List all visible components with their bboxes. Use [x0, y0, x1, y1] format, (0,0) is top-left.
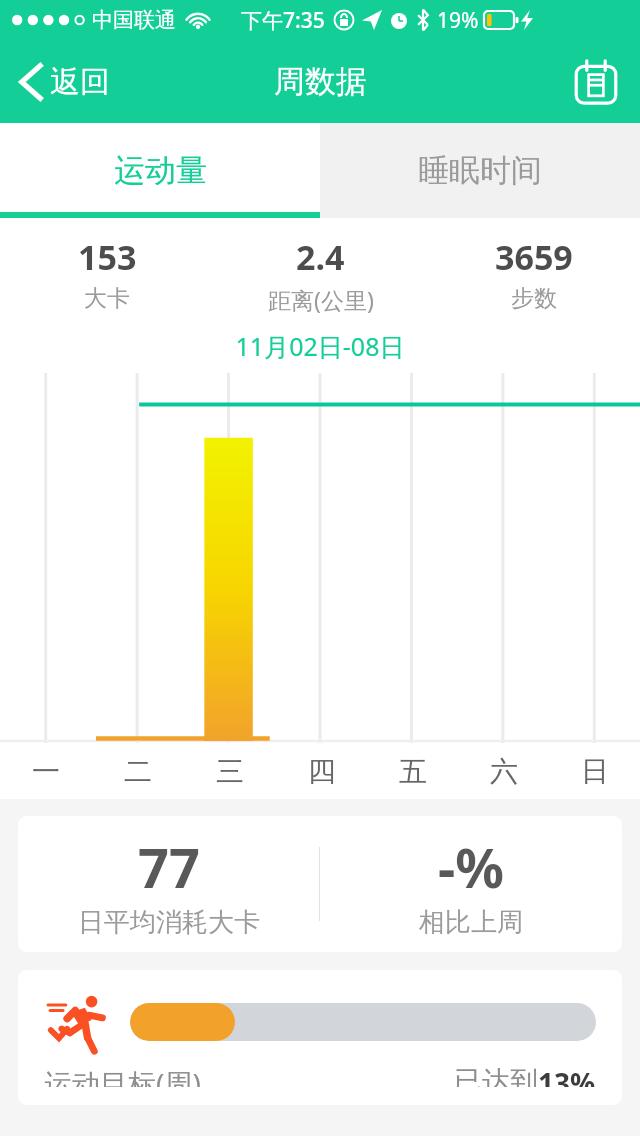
staticText: 一: [32, 754, 60, 789]
staticText: 返回: [50, 63, 110, 101]
staticText: 五: [399, 754, 427, 789]
staticText: 日: [581, 754, 609, 789]
staticText: 已达到: [454, 1064, 538, 1087]
button[interactable]: 运动目标(周): [18, 970, 622, 1105]
staticText: 四: [308, 754, 336, 789]
button[interactable]: Month view: [570, 56, 622, 108]
staticText: 日平均消耗大卡: [78, 906, 260, 939]
staticText: 运动目标(周): [44, 1064, 201, 1087]
staticText: -%: [438, 830, 504, 904]
staticText: 11月02日-08日: [0, 329, 640, 363]
staticText: 3659: [495, 234, 573, 280]
staticText: 77: [138, 830, 200, 904]
staticText: 六: [490, 754, 518, 789]
staticText: 19%: [437, 6, 479, 35]
button[interactable]: 77: [18, 816, 622, 952]
staticText: 距离(公里): [268, 284, 374, 315]
staticText: 运动量: [114, 151, 207, 190]
staticText: 13%: [538, 1064, 596, 1087]
staticText: 下午7:35: [241, 6, 325, 35]
staticText: 153: [78, 234, 137, 280]
staticText: 大卡: [84, 284, 130, 313]
button[interactable]: 睡眠时间: [320, 123, 640, 218]
staticText: 相比上周: [419, 906, 523, 939]
staticText: 睡眠时间: [418, 151, 542, 190]
staticText: 步数: [511, 284, 557, 313]
button[interactable]: 返回: [14, 55, 116, 109]
button[interactable]: 运动量: [0, 123, 320, 218]
staticText: 2.4: [296, 234, 345, 280]
staticText: 三: [216, 754, 244, 789]
staticText: 二: [124, 754, 152, 789]
staticText: 中国联通: [92, 7, 176, 33]
staticText: 周数据: [274, 62, 367, 101]
